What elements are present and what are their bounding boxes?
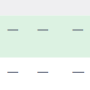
button[interactable]: Today (4, 67, 22, 79)
button[interactable]: This week (34, 67, 52, 79)
button[interactable]: This month (69, 67, 88, 79)
button[interactable]: Activity (34, 24, 52, 36)
button[interactable]: Overview (4, 24, 22, 36)
button[interactable]: Reports (69, 24, 87, 36)
